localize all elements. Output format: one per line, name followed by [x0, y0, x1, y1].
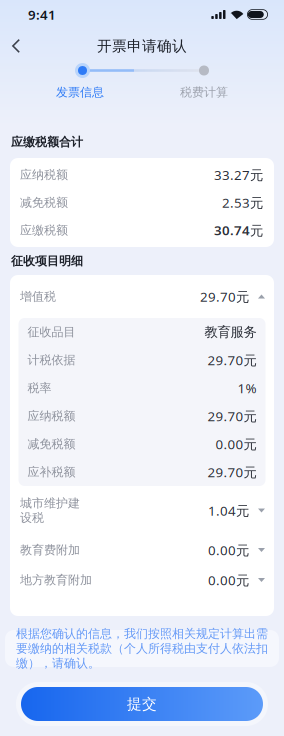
staticText: 29.70元 — [207, 407, 256, 425]
staticText: 教育费附加 — [20, 543, 80, 557]
staticText: 税费计算 — [180, 85, 228, 100]
staticText: 33.27元 — [214, 166, 263, 184]
button[interactable]: 教育费附加 — [10, 535, 274, 565]
staticText: 1% — [237, 379, 256, 397]
staticText: 减免税额 — [20, 195, 68, 210]
staticText: 9:41 — [28, 6, 56, 23]
staticText: 应纳税额 — [27, 409, 75, 423]
staticText: 征收项目明细 — [11, 254, 83, 268]
staticText: 计税依据 — [27, 353, 75, 367]
staticText: 发票信息 — [56, 85, 104, 100]
staticText: 30.74元 — [214, 221, 263, 239]
staticText: 应补税额 — [27, 465, 75, 479]
staticText: 0.00元 — [215, 435, 256, 453]
staticText: 税率 — [27, 381, 51, 395]
button[interactable]: Back — [0, 31, 31, 61]
button[interactable]: 地方教育附加 — [10, 565, 274, 595]
staticText: 城市维护建设税 — [20, 496, 80, 525]
staticText: 地方教育附加 — [20, 573, 92, 587]
staticText: 减免税额 — [27, 437, 75, 451]
staticText: 应缴税额合计 — [11, 135, 83, 149]
staticText: 29.70元 — [207, 463, 256, 481]
staticText: 提交 — [127, 695, 157, 713]
staticText: 开票申请确认 — [97, 37, 187, 55]
staticText: 0.00元 — [208, 541, 249, 559]
button[interactable]: 增值税 — [10, 275, 274, 318]
staticText: 应纳税额 — [20, 167, 68, 182]
staticText: 29.70元 — [207, 351, 256, 369]
staticText: 1.04元 — [208, 502, 249, 519]
staticText: 应缴税额 — [20, 223, 68, 237]
button[interactable]: 城市维护建设税 — [10, 486, 274, 535]
button[interactable]: 提交 — [16, 682, 268, 726]
staticText: 征收品目 — [27, 325, 75, 339]
staticText: 2.53元 — [222, 194, 263, 211]
staticText: 教育服务 — [204, 324, 256, 340]
staticText: 增值税 — [20, 289, 56, 304]
staticText: 根据您确认的信息，我们按照相关规定计算出需要缴纳的相关税款（个人所得税由支付人依… — [16, 626, 268, 671]
staticText: 0.00元 — [208, 571, 249, 589]
staticText: 29.70元 — [200, 288, 249, 305]
